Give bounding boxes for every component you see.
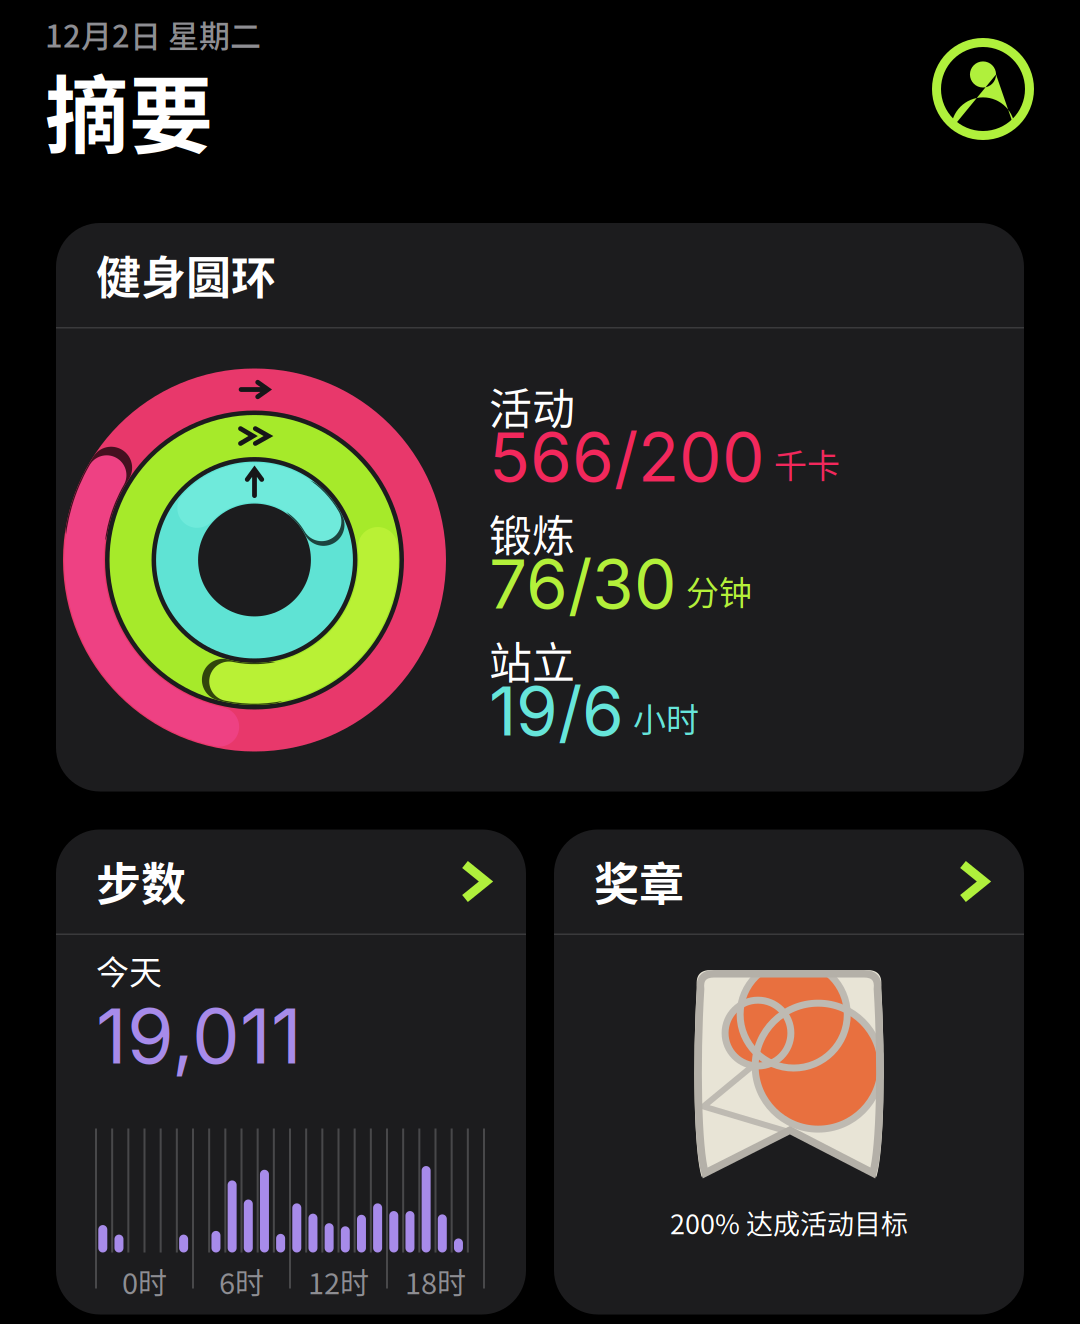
staticText: 6时 — [219, 1260, 264, 1302]
staticText: 今天 — [96, 946, 162, 994]
staticText: 19,011 — [96, 990, 302, 1082]
staticText: 活动 — [489, 375, 575, 437]
staticText: 12月2日 星期二 — [45, 12, 261, 56]
staticText: 健身圆环 — [96, 242, 276, 308]
staticText: 小时 — [633, 694, 699, 741]
staticText: 19/6 — [489, 670, 624, 752]
staticText: 12时 — [308, 1260, 369, 1302]
staticText: 200% 达成活动目标 — [670, 1203, 908, 1242]
staticText: 步数 — [96, 849, 186, 914]
staticText: 分钟 — [686, 567, 752, 614]
staticText: 18时 — [405, 1260, 466, 1302]
staticText: 奖章 — [594, 849, 684, 914]
staticText: 0时 — [122, 1260, 167, 1302]
staticText: 摘要 — [45, 49, 213, 171]
button[interactable]: 步数 — [56, 829, 526, 1314]
button[interactable]: 奖章 — [554, 829, 1024, 1314]
staticText: 站立 — [489, 629, 575, 691]
staticText: 锻炼 — [489, 502, 575, 564]
button[interactable]: 个人资料 — [928, 34, 1038, 144]
staticText: 76/30 — [489, 543, 677, 625]
staticText: 千卡 — [774, 440, 840, 487]
staticText: 566/200 — [489, 416, 765, 498]
